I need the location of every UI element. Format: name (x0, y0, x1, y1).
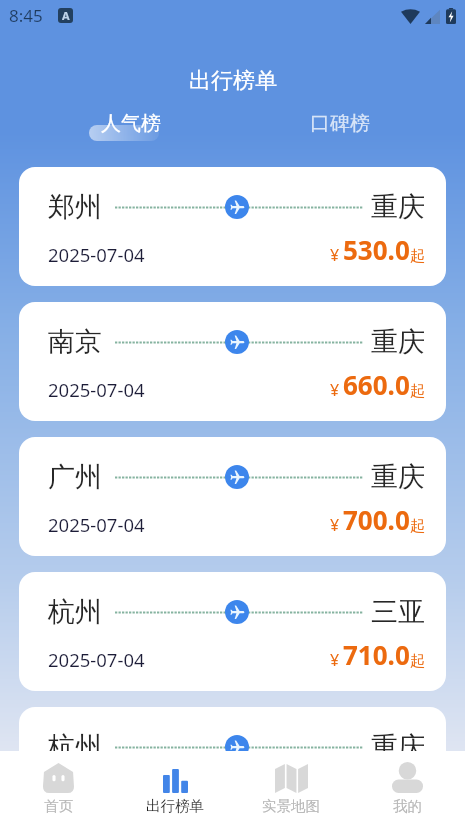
button[interactable]: 出行榜单 (117, 751, 233, 826)
staticText: 8:45 (9, 4, 43, 27)
staticText: 口碑榜 (310, 111, 370, 136)
staticText: 出行榜单 (146, 797, 204, 815)
staticText: 重庆 (371, 460, 425, 494)
staticText: 重庆 (371, 730, 425, 764)
staticText: ¥ (330, 244, 340, 266)
staticText: 起 (410, 247, 425, 266)
staticText: ¥ (330, 514, 340, 536)
button[interactable]: 杭州 (19, 572, 446, 691)
staticText: 广州 (48, 460, 102, 494)
button[interactable]: 人气榜 (93, 108, 169, 139)
staticText: 2025-07-04 (48, 377, 145, 402)
staticText: ¥ (330, 649, 340, 671)
staticText: 710.0 (343, 637, 410, 672)
staticText: 杭州 (48, 595, 102, 629)
staticText: ¥ (330, 379, 340, 401)
staticText: 2025-07-04 (48, 782, 145, 807)
staticText: 人气榜 (101, 111, 161, 136)
button[interactable]: 口碑榜 (302, 108, 378, 139)
staticText: 起 (410, 382, 425, 401)
staticText: 郑州 (48, 190, 102, 224)
button[interactable]: 我的 (349, 751, 465, 826)
staticText: A (62, 8, 70, 23)
staticText: 南京 (48, 325, 102, 359)
staticText: 720.0 (343, 772, 410, 807)
staticText: 实景地图 (262, 797, 320, 815)
staticText: 起 (410, 517, 425, 536)
button[interactable]: 广州 (19, 437, 446, 556)
staticText: 起 (410, 787, 425, 806)
staticText: 530.0 (343, 232, 410, 267)
staticText: 出行榜单 (189, 67, 277, 95)
staticText: 首页 (44, 797, 73, 815)
staticText: 我的 (393, 797, 422, 815)
staticText: 2025-07-04 (48, 512, 145, 537)
button[interactable]: 首页 (0, 751, 117, 826)
staticText: 2025-07-04 (48, 647, 145, 672)
button[interactable]: 杭州 (19, 707, 446, 826)
staticText: 660.0 (343, 367, 410, 402)
button[interactable]: 南京 (19, 302, 446, 421)
staticText: 三亚 (371, 595, 425, 629)
staticText: 重庆 (371, 325, 425, 359)
button[interactable]: 郑州 (19, 167, 446, 286)
staticText: 杭州 (48, 730, 102, 764)
staticText: 700.0 (343, 502, 410, 537)
staticText: 2025-07-04 (48, 242, 145, 267)
staticText: 起 (410, 652, 425, 671)
button[interactable]: 实景地图 (233, 751, 349, 826)
staticText: 重庆 (371, 190, 425, 224)
